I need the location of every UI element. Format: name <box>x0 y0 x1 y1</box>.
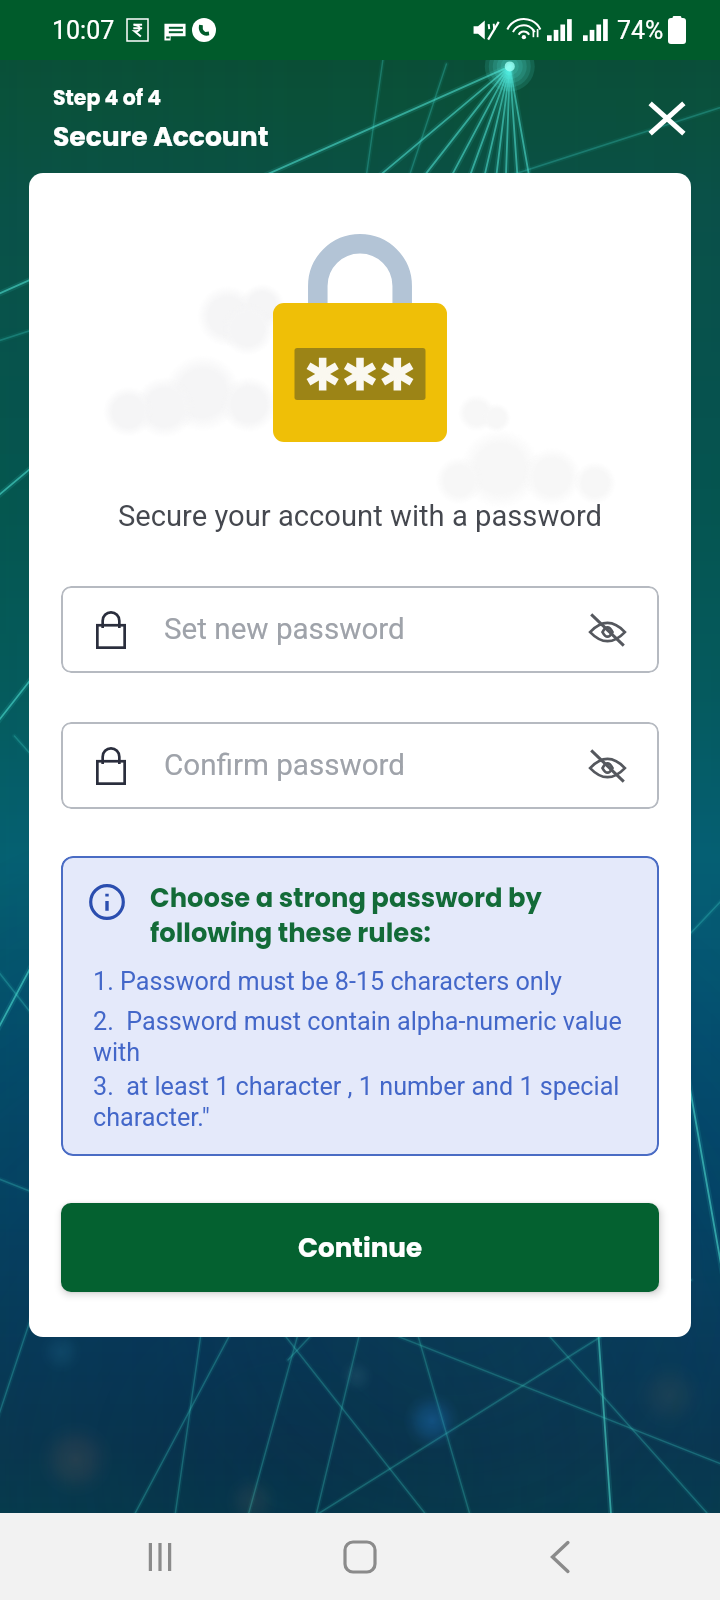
staticText: Secure Account <box>53 118 269 155</box>
button[interactable]: Continue <box>61 1203 659 1292</box>
staticText: Set new password <box>164 612 581 647</box>
staticText: 3. at least 1 character , 1 number and 1… <box>93 1072 645 1132</box>
button[interactable]: Set new password <box>61 586 659 673</box>
staticText: 10:07 <box>52 16 115 45</box>
button[interactable]: Back <box>520 1517 600 1597</box>
button[interactable]: Toggle password visibility <box>581 740 633 792</box>
button[interactable]: Home <box>320 1517 400 1597</box>
staticText: 2. Password must contain alpha-numeric v… <box>93 1007 645 1067</box>
staticText: Continue <box>298 1229 423 1266</box>
staticText: Confirm password <box>164 748 581 783</box>
staticText: 1. Password must be 8-15 characters only <box>93 967 562 997</box>
button[interactable]: Close <box>633 84 701 152</box>
staticText: Choose a strong password by following th… <box>150 880 645 951</box>
button[interactable]: Confirm password <box>61 722 659 809</box>
button[interactable]: Recents <box>120 1517 200 1597</box>
button[interactable]: Toggle password visibility <box>581 604 633 656</box>
staticText: Secure your account with a password <box>29 499 691 533</box>
staticText: Step 4 of 4 <box>53 84 162 113</box>
staticText: 74% <box>617 16 664 45</box>
